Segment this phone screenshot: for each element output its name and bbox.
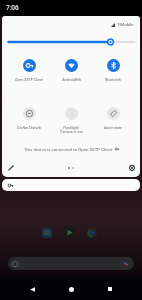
button[interactable]: Auto-rotate [92,107,134,130]
staticText: AndroidWifi [62,78,81,82]
button[interactable]: AndroidWifi [50,59,92,82]
staticText: 7:06 [6,4,19,12]
staticText: Bluetooth [105,78,121,82]
staticText: Auto-rotate [104,126,122,130]
button[interactable]: Recent apps [103,282,117,296]
button[interactable]: Edit tiles [5,162,17,174]
staticText: Do Not Disturb [17,126,41,130]
button[interactable]: Flashlight [50,107,92,134]
button[interactable] [2,179,140,191]
staticText: Open SSTP Client [15,78,43,82]
staticText: T-Mobile [117,22,134,27]
staticText: Flashlight [63,126,79,130]
button[interactable]: Settings [126,162,138,174]
button[interactable]: Open SSTP Client [8,59,50,82]
button[interactable]: Do Not Disturb [8,107,50,130]
button[interactable] [8,257,134,270]
button[interactable]: Back [25,282,39,296]
button[interactable]: Home [64,282,78,296]
staticText: Camera in use [60,130,83,134]
staticText: This device is connected to Open SSTP Cl… [24,147,113,152]
button[interactable]: Bluetooth [92,59,134,82]
